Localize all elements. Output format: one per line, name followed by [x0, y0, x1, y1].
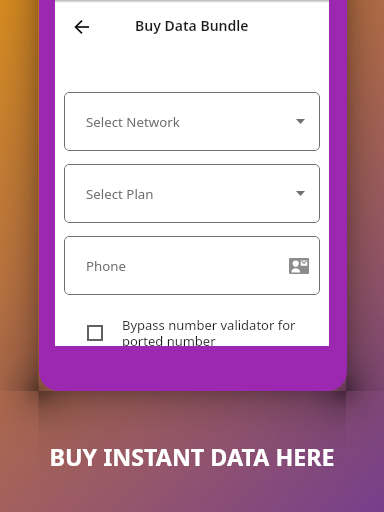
staticText: BUY INSTANT DATA HERE — [0, 441, 384, 473]
button[interactable]: Select Network — [64, 92, 320, 151]
staticText: Select Network — [86, 113, 180, 131]
button[interactable]: Phone — [64, 236, 320, 295]
staticText: Select Plan — [86, 185, 154, 203]
staticText: Buy Data Bundle — [135, 16, 249, 35]
staticText: Bypass number validator for ported numbe… — [122, 316, 329, 346]
button[interactable]: Back — [62, 7, 102, 47]
button[interactable]: Select Plan — [64, 164, 320, 223]
staticText: Phone — [86, 257, 127, 275]
button[interactable]: Bypass number validator for ported numbe… — [55, 316, 329, 346]
